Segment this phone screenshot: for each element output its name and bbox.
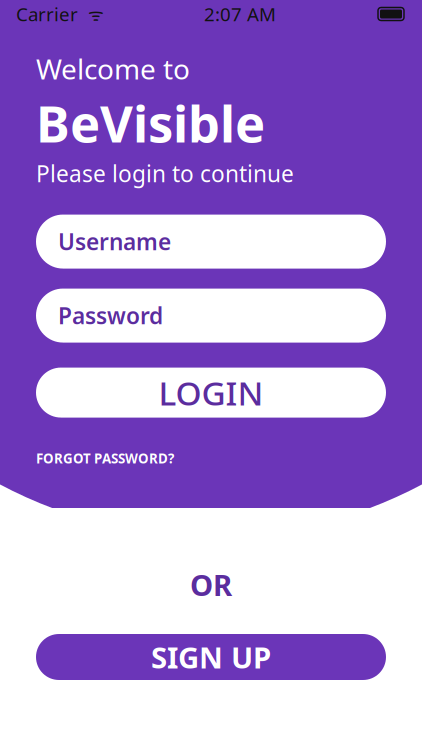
staticText: Username [58,226,171,257]
staticText: LOGIN [158,370,263,415]
button[interactable]: SIGN UP [36,634,386,680]
button[interactable]: LOGIN [36,368,386,418]
staticText: 2:07 AM [204,2,276,26]
staticText: SIGN UP [151,637,271,676]
staticText: Password [58,300,163,331]
staticText: ᯤ [78,2,104,25]
staticText: Please login to continue [36,158,294,189]
staticText: Carrier [16,2,78,26]
staticText: BeVisible [36,89,265,156]
staticText: Welcome to [36,50,190,87]
button[interactable]: Username [36,215,386,269]
button[interactable]: FORGOT PASSWORD? [36,444,174,473]
staticText: FORGOT PASSWORD? [36,450,174,467]
staticText: OR [190,565,232,604]
button[interactable]: Password [36,289,386,343]
